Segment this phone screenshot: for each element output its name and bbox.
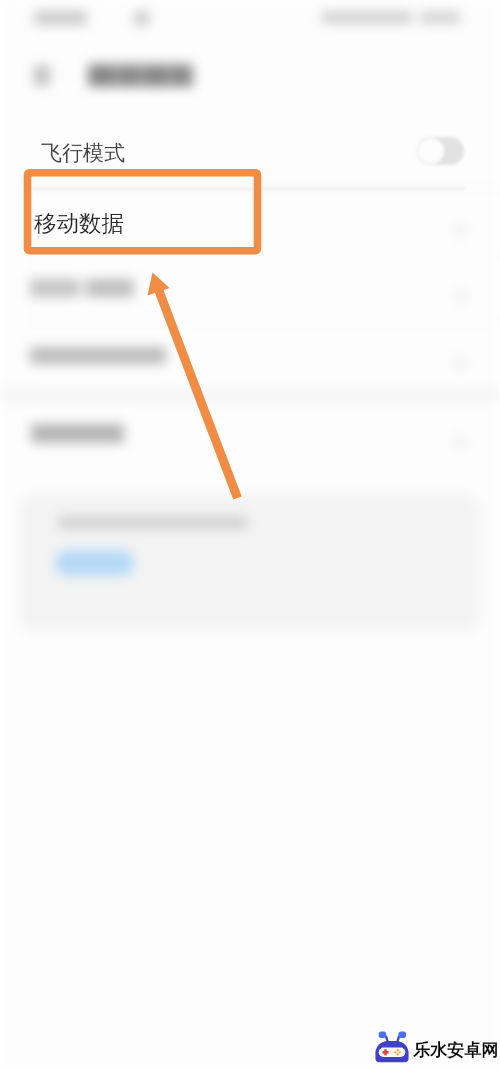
other: Highlight [0,0,500,1070]
button[interactable] [0,401,500,467]
button[interactable]: Airplane mode toggle [417,137,464,165]
staticText: 乐水安卓网 [413,1040,498,1061]
button[interactable] [0,118,500,189]
button[interactable] [0,321,500,389]
button[interactable] [0,255,500,321]
staticText: 移动数据 [34,209,124,237]
button[interactable] [55,550,134,576]
button[interactable]: Back [34,65,50,86]
staticText: 飞行模式 [41,140,125,166]
button[interactable] [0,189,500,255]
